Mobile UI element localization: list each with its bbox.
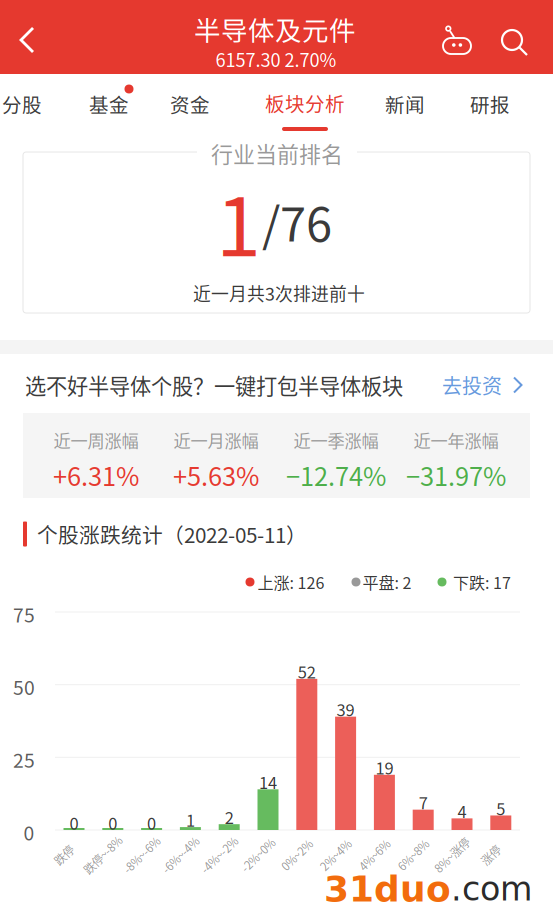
button[interactable]: Back (10, 17, 56, 63)
staticText: 半导体及元件 (194, 10, 356, 48)
staticText: 4%~6% (355, 847, 393, 863)
staticText: −31.97% (406, 457, 506, 493)
staticText: 个股涨跌统计（2022-05-11） (37, 519, 307, 549)
staticText: -4%~-2% (196, 847, 242, 863)
staticText: 基金 (89, 90, 129, 118)
staticText: 4 (457, 799, 466, 823)
staticText: 2%~4% (317, 847, 355, 863)
button[interactable]: 基金 (65, 74, 153, 136)
button[interactable]: 分股 (0, 74, 66, 136)
staticText: 近一月共3次排进前十 (193, 280, 365, 306)
staticText: 跌停 (53, 847, 75, 863)
staticText: 涨停 (480, 847, 502, 863)
staticText: 新闻 (385, 90, 425, 118)
staticText: 资金 (170, 90, 210, 118)
staticText: -2%~0% (237, 847, 279, 863)
staticText: 14 (259, 770, 277, 794)
staticText: 近一年涨幅 (413, 427, 498, 452)
staticText: 0 (108, 811, 117, 834)
staticText: 39 (337, 697, 355, 721)
staticText: −12.74% (286, 457, 386, 493)
staticText: 跌停~-8% (79, 847, 127, 863)
staticText: 52 (298, 659, 316, 683)
staticText: 研报 (470, 90, 510, 118)
staticText: -8%~-6% (119, 847, 165, 863)
button[interactable]: 资金 (146, 74, 234, 136)
staticText: 25 (13, 745, 35, 773)
staticText: +6.31% (53, 457, 139, 493)
staticText: 19 (375, 755, 393, 779)
staticText: 平盘: 2 (362, 570, 411, 594)
staticText: 8%~涨停 (430, 847, 474, 863)
staticText: 去投资 (442, 370, 502, 399)
staticText: 75 (13, 600, 35, 628)
button[interactable]: 板块分析 (251, 74, 359, 136)
staticText: 50 (13, 673, 35, 701)
staticText: 7 (419, 790, 428, 814)
staticText: 0%~2% (278, 847, 316, 863)
staticText: 0 (69, 811, 78, 834)
staticText: 下跌: 17 (453, 570, 511, 594)
staticText: 上涨: 126 (257, 570, 324, 594)
staticText: 行业当前排名 (211, 137, 343, 169)
staticText: 31duo (324, 868, 451, 910)
staticText: 1 (186, 808, 195, 831)
staticText: 分股 (2, 90, 42, 118)
staticText: 1 (216, 162, 261, 280)
button[interactable]: 选不好半导体个股？一键打包半导体板块 (0, 357, 553, 413)
button[interactable]: 新闻 (361, 74, 449, 136)
staticText: 近一月涨幅 (173, 427, 258, 452)
button[interactable]: 研报 (446, 74, 534, 136)
staticText: /76 (262, 187, 332, 255)
staticText: +5.63% (173, 457, 259, 493)
staticText: 板块分析 (265, 89, 345, 117)
staticText: 2 (225, 805, 234, 829)
staticText: 近一周涨幅 (53, 427, 138, 452)
staticText: 6%~8% (394, 847, 432, 863)
staticText: 0 (23, 818, 34, 846)
staticText: 6157.30 2.70% (215, 46, 336, 72)
staticText: 5 (496, 796, 505, 820)
staticText: .com (451, 870, 532, 908)
staticText: -6%~-4% (157, 847, 203, 863)
button[interactable]: Search (493, 21, 537, 65)
staticText: 0 (147, 811, 156, 834)
button[interactable]: AI assistant (435, 21, 479, 65)
staticText: 选不好半导体个股？一键打包半导体板块 (25, 370, 403, 400)
staticText: 近一季涨幅 (293, 427, 378, 452)
